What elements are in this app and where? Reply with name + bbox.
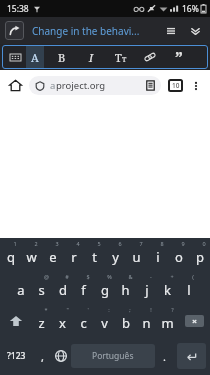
button[interactable]: Keyboard: [7, 47, 23, 67]
button[interactable]: ?: [157, 304, 178, 337]
staticText: h: [121, 281, 130, 299]
button[interactable]: -: [136, 271, 157, 304]
staticText: j: [145, 281, 149, 299]
button[interactable]: A: [26, 46, 44, 68]
button[interactable]: Change language: [51, 337, 71, 375]
staticText: A: [31, 50, 39, 65]
button[interactable]: &: [115, 271, 136, 304]
staticText: a: [50, 79, 56, 92]
staticText: ?: [171, 306, 174, 313]
button[interactable]: I: [84, 47, 98, 67]
staticText: ": [66, 306, 69, 313]
button[interactable]: Insert link: [142, 47, 158, 67]
button[interactable]: a: [29, 76, 161, 95]
staticText: s: [38, 281, 45, 299]
button[interactable]: ': [73, 304, 94, 337]
button[interactable]: Reader mode: [143, 78, 158, 93]
button[interactable]: 4: [63, 238, 84, 271]
button[interactable]: T: [113, 47, 129, 67]
staticText: i: [156, 248, 160, 266]
button[interactable]: 8: [147, 238, 168, 271]
staticText: ;: [129, 306, 131, 313]
staticText: l: [187, 281, 191, 299]
staticText: e: [49, 248, 57, 266]
staticText: :: [108, 306, 110, 313]
button[interactable]: 6: [105, 238, 126, 271]
button[interactable]: Collapse: [185, 21, 205, 41]
button[interactable]: 1: [0, 238, 21, 271]
staticText: m: [161, 314, 174, 332]
staticText: z: [38, 314, 45, 332]
staticText: &: [128, 273, 133, 280]
button[interactable]: 0: [189, 238, 210, 271]
staticText: r: [71, 248, 77, 266]
staticText: $: [86, 273, 90, 280]
button[interactable]: Quote: [171, 47, 187, 67]
button[interactable]: ,: [33, 337, 51, 375]
staticText: (: [192, 273, 194, 280]
staticText: %: [107, 273, 112, 280]
staticText: -: [150, 273, 152, 280]
staticText: o: [175, 248, 183, 266]
button[interactable]: Português: [71, 344, 155, 368]
button[interactable]: ": [52, 304, 73, 337]
staticText: 8: [160, 240, 164, 247]
staticText: n: [142, 314, 151, 332]
staticText: 9: [181, 240, 185, 247]
staticText: b: [122, 314, 130, 332]
button[interactable]: 3: [42, 238, 63, 271]
staticText: g: [101, 281, 109, 299]
staticText: p: [196, 248, 204, 266]
button[interactable]: !: [136, 304, 157, 337]
button[interactable]: Backspace: [178, 304, 210, 337]
button[interactable]: 5: [84, 238, 105, 271]
staticText: 5: [97, 240, 101, 247]
button[interactable]: #: [52, 271, 73, 304]
staticText: 10: [172, 81, 180, 90]
button[interactable]: Share: [5, 21, 24, 40]
button[interactable]: 7: [126, 238, 147, 271]
button[interactable]: Shift: [0, 304, 31, 337]
button[interactable]: *: [31, 304, 52, 337]
staticText: f: [81, 281, 86, 299]
button[interactable]: Home: [5, 75, 26, 96]
button[interactable]: $: [73, 271, 94, 304]
button[interactable]: Enter: [177, 343, 206, 369]
staticText: y: [112, 248, 119, 266]
button[interactable]: a: [10, 271, 31, 304]
staticText: project.org: [56, 79, 106, 92]
staticText: 15:38: [7, 3, 29, 15]
button[interactable]: .: [155, 337, 173, 375]
button[interactable]: ?123: [0, 337, 33, 375]
button[interactable]: More options: [186, 76, 205, 95]
staticText: 6: [118, 240, 122, 247]
button[interactable]: (: [178, 271, 199, 304]
button[interactable]: +: [157, 271, 178, 304]
button[interactable]: Menu: [161, 21, 181, 41]
button[interactable]: %: [94, 271, 115, 304]
staticText: *: [44, 306, 48, 313]
staticText: w: [26, 248, 37, 266]
button[interactable]: 9: [168, 238, 189, 271]
staticText: 7: [139, 240, 143, 247]
button[interactable]: ;: [115, 304, 136, 337]
staticText: ,: [41, 349, 44, 364]
button[interactable]: 2: [21, 238, 42, 271]
staticText: 4: [76, 240, 80, 247]
button[interactable]: :: [94, 304, 115, 337]
button[interactable]: Tabs: [168, 79, 183, 92]
button[interactable]: @: [31, 271, 52, 304]
staticText: #: [65, 273, 69, 280]
staticText: .: [163, 349, 166, 364]
staticText: c: [80, 314, 87, 332]
staticText: a: [17, 281, 25, 299]
staticText: Português: [92, 350, 134, 362]
staticText: B: [58, 50, 66, 65]
staticText: ': [87, 306, 89, 313]
staticText: 1: [13, 240, 17, 247]
staticText: x: [59, 314, 66, 332]
staticText: ”: [175, 47, 183, 67]
button[interactable]: B: [55, 47, 69, 67]
button[interactable]: Change in the behavi...: [32, 24, 161, 38]
staticText: d: [59, 281, 67, 299]
